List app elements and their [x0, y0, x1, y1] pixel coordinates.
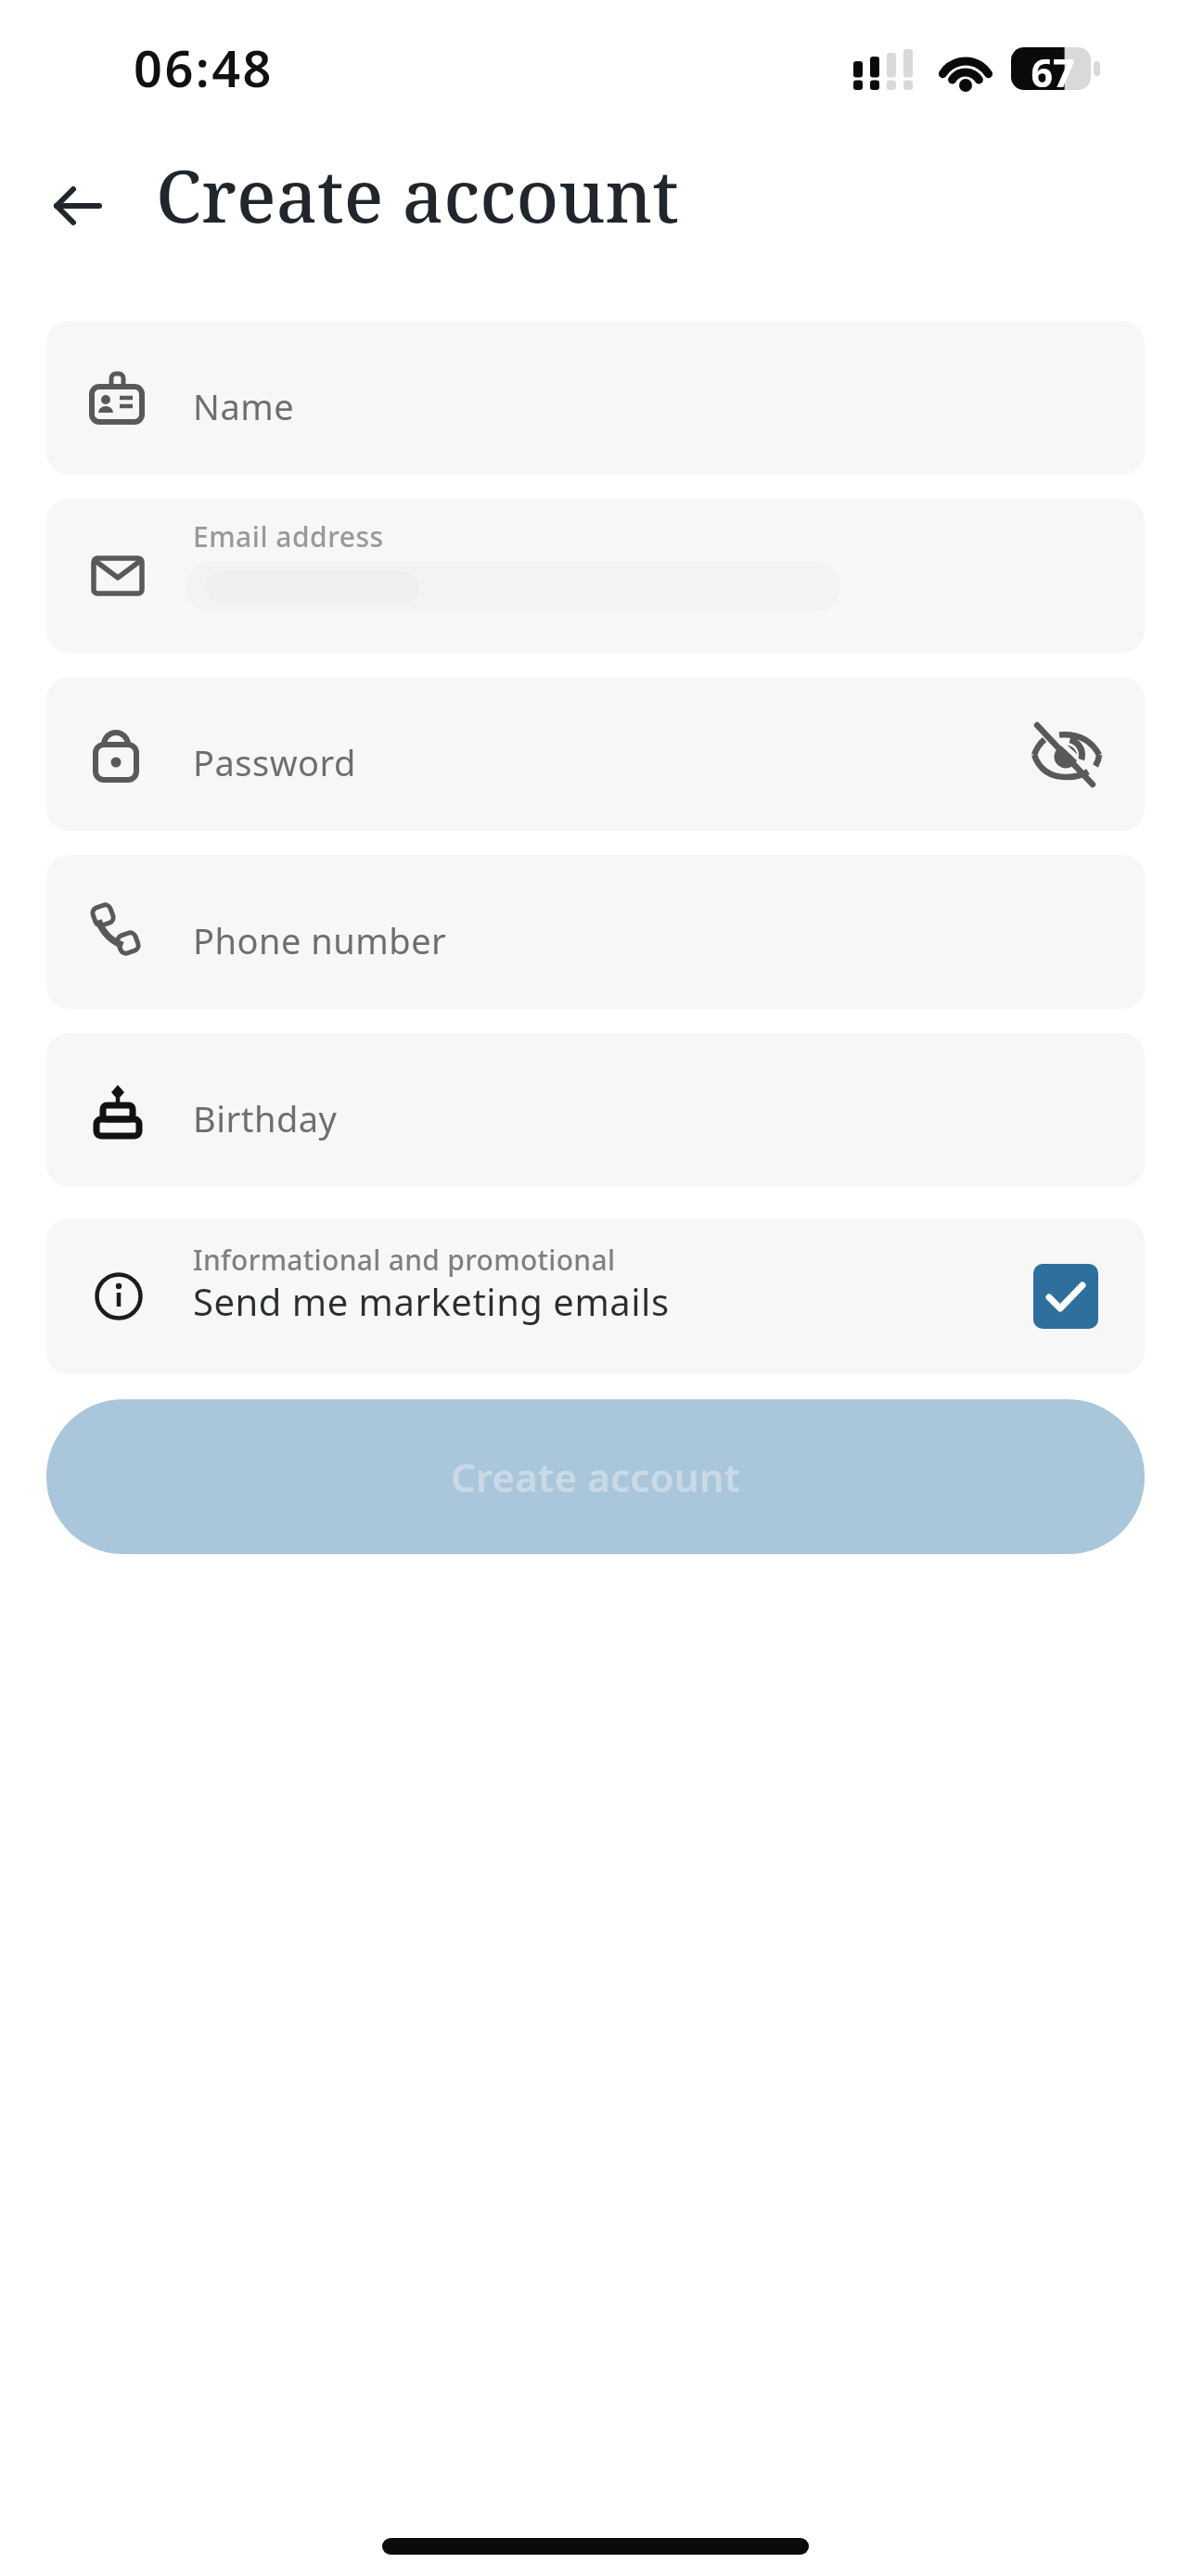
staticText: Email address: [193, 517, 384, 555]
button[interactable]: [1033, 1264, 1098, 1329]
button[interactable]: [1022, 709, 1111, 798]
staticText: Birthday: [193, 1094, 338, 1142]
staticText: Password: [193, 738, 356, 786]
staticText: 06:48: [134, 33, 274, 102]
button[interactable]: Create account: [46, 1399, 1145, 1554]
button[interactable]: Email address: [46, 499, 1145, 653]
button[interactable]: Phone number: [46, 855, 1145, 1009]
staticText: Informational and promotional: [193, 1241, 616, 1279]
staticText: Name: [193, 382, 295, 430]
staticText: Phone number: [193, 916, 447, 964]
button[interactable]: [45, 176, 111, 236]
button[interactable]: Name: [46, 321, 1145, 475]
button[interactable]: Informational and promotional: [46, 1218, 1145, 1374]
button[interactable]: Birthday: [46, 1033, 1145, 1187]
staticText: Send me marketing emails: [193, 1276, 670, 1326]
button[interactable]: Password: [46, 677, 1145, 831]
staticText: 67: [1024, 46, 1082, 89]
staticText: Create account: [451, 1450, 740, 1503]
staticText: Create account: [156, 146, 679, 244]
